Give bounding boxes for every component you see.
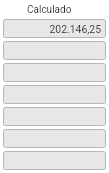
staticText: 202.146,25 [49,23,101,35]
button[interactable]: Campo 7 [3,151,106,170]
staticText: Calculado [27,4,72,16]
button[interactable]: Campo 2 [3,41,106,60]
button[interactable]: Campo 4 [3,85,106,104]
button[interactable]: Campo 3 [3,63,106,82]
button[interactable]: Valor calculado [3,19,106,38]
button[interactable]: Campo 6 [3,129,106,148]
button[interactable]: Campo 5 [3,107,106,126]
